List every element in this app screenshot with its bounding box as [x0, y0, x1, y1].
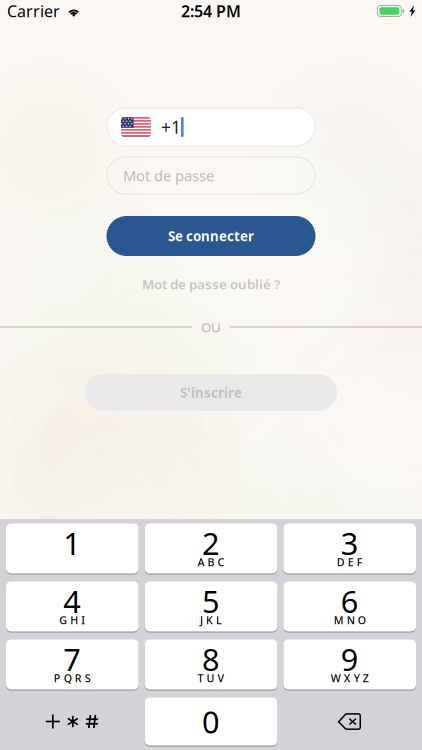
staticText: W X Y Z	[331, 671, 369, 685]
staticText: J K L	[200, 613, 222, 627]
button[interactable]: 2	[145, 523, 277, 573]
staticText: 0	[202, 701, 220, 742]
button[interactable]: 7	[6, 639, 139, 689]
button[interactable]: 8	[145, 639, 277, 689]
button[interactable]: Mot de passe	[107, 157, 315, 194]
staticText: G H I	[59, 613, 85, 627]
staticText: +1	[161, 115, 181, 138]
staticText: 4	[63, 581, 81, 621]
button[interactable]: Se connecter	[106, 216, 315, 256]
button[interactable]: Delete	[283, 697, 416, 745]
button[interactable]: 3	[283, 523, 416, 573]
staticText: T U V	[197, 671, 224, 685]
button[interactable]: Mot de passe oublié ?	[142, 275, 280, 293]
button[interactable]: Symbols	[6, 697, 139, 745]
staticText: Mot de passe oublié ?	[142, 275, 280, 293]
button[interactable]: 0	[145, 697, 277, 745]
button[interactable]: 9	[283, 639, 416, 689]
staticText: A B C	[197, 555, 224, 569]
staticText: 2:54 PM	[181, 0, 241, 22]
staticText: 8	[202, 639, 220, 679]
button[interactable]: 1	[6, 523, 139, 573]
staticText: D E F	[337, 555, 363, 569]
staticText: 5	[202, 581, 220, 621]
button[interactable]: 4	[6, 581, 139, 631]
staticText: OU	[201, 318, 221, 336]
staticText: 3	[341, 523, 359, 563]
staticText: 2	[202, 523, 220, 563]
button[interactable]: 6	[283, 581, 416, 631]
button[interactable]: S'inscrire	[85, 374, 337, 411]
staticText: Mot de passe	[123, 166, 214, 185]
staticText: Se connecter	[168, 227, 254, 245]
button[interactable]: +1	[107, 108, 315, 146]
staticText: 7	[63, 639, 81, 679]
staticText: 6	[341, 581, 359, 621]
button[interactable]: 5	[145, 581, 277, 631]
staticText: 1	[63, 523, 81, 563]
staticText: 9	[341, 639, 359, 679]
staticText: Carrier	[7, 0, 60, 22]
staticText: P Q R S	[54, 671, 91, 685]
staticText: S'inscrire	[180, 384, 242, 401]
staticText: M N O	[334, 613, 366, 627]
